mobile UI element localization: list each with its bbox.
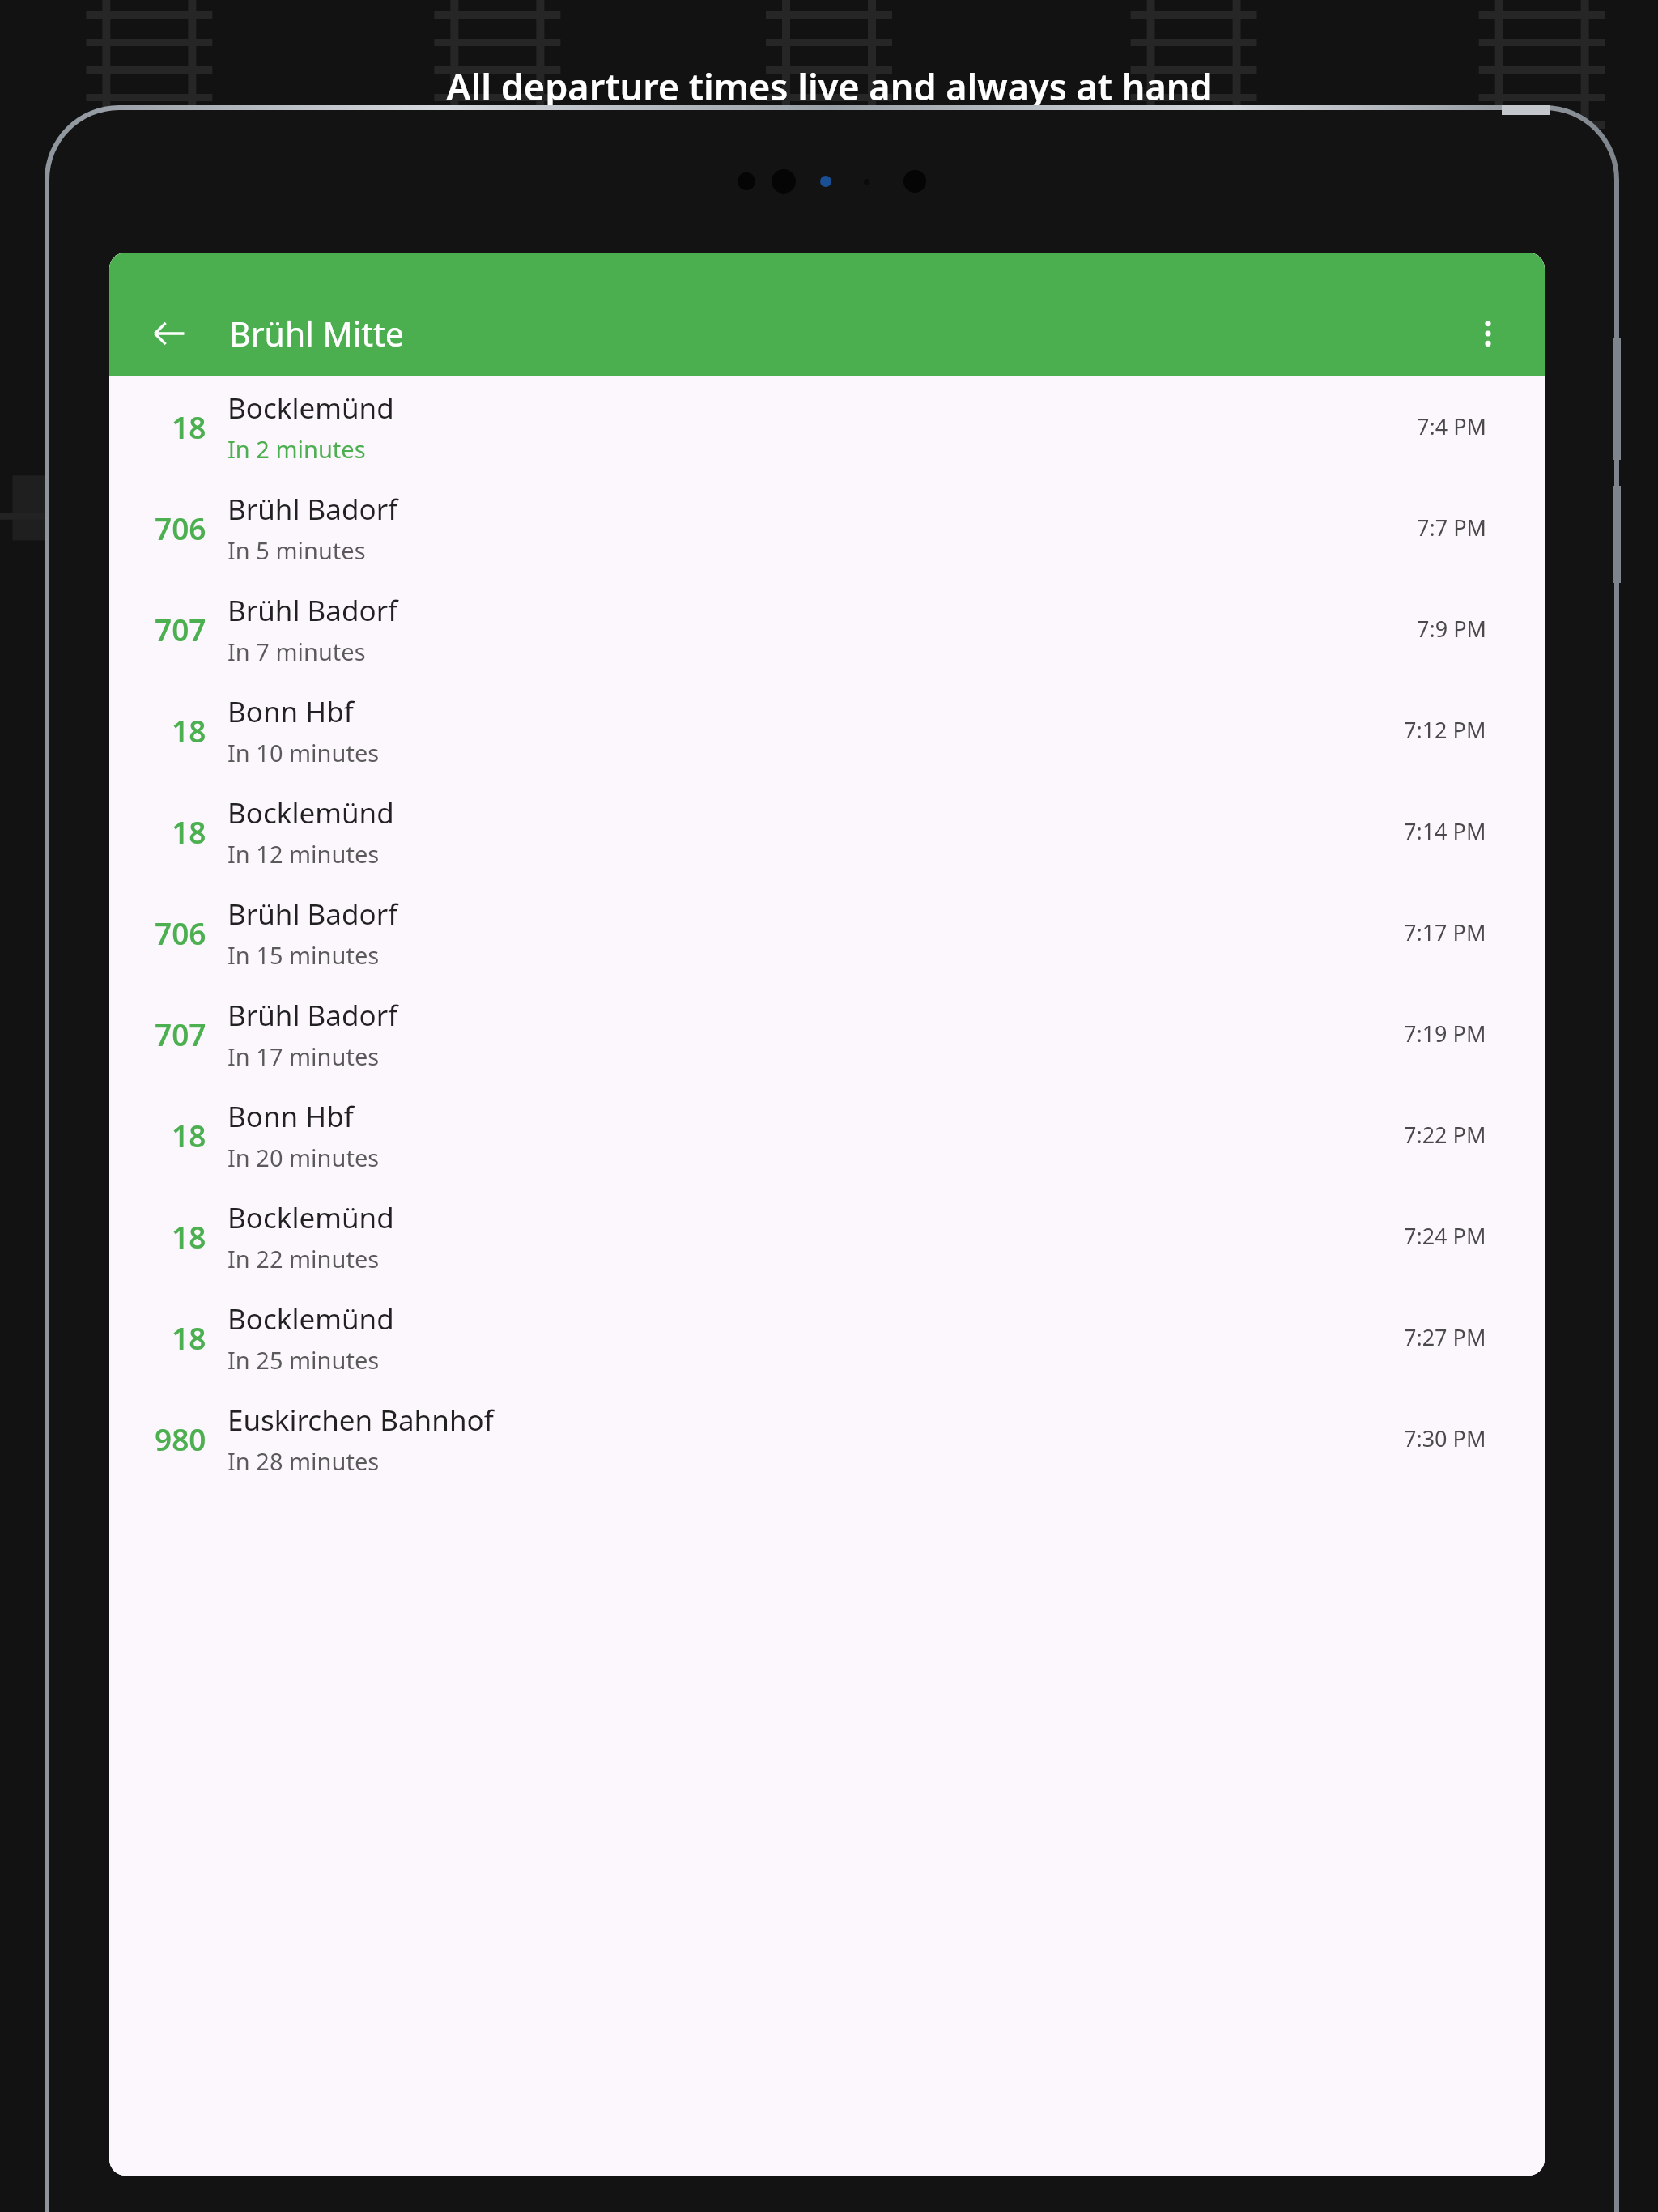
button[interactable]: 18: [109, 1287, 1545, 1388]
staticText: 707: [155, 609, 206, 649]
staticText: In 15 minutes: [227, 939, 380, 971]
staticText: 18: [172, 1216, 206, 1257]
staticText: Brühl Mitte: [229, 311, 404, 356]
staticText: 7:4 PM: [1417, 411, 1486, 441]
button[interactable]: 706: [109, 882, 1545, 983]
button[interactable]: 18: [109, 376, 1545, 477]
staticText: Bonn Hbf: [227, 1097, 354, 1136]
staticText: Brühl Badorf: [227, 996, 398, 1035]
staticText: 706: [155, 912, 206, 953]
button[interactable]: 706: [109, 477, 1545, 578]
button[interactable]: Back: [130, 295, 208, 372]
staticText: In 20 minutes: [227, 1142, 380, 1173]
staticText: 7:7 PM: [1417, 513, 1486, 542]
staticText: 7:22 PM: [1404, 1120, 1486, 1150]
staticText: 7:9 PM: [1417, 614, 1486, 644]
staticText: 7:30 PM: [1404, 1423, 1486, 1453]
staticText: Brühl Badorf: [227, 490, 398, 529]
staticText: Brühl Badorf: [227, 591, 398, 630]
staticText: 18: [172, 406, 206, 447]
staticText: All departure times live and always at h…: [446, 62, 1213, 111]
staticText: 7:14 PM: [1404, 816, 1486, 846]
staticText: In 17 minutes: [227, 1040, 380, 1072]
staticText: Bocklemünd: [227, 1300, 394, 1338]
button[interactable]: 18: [109, 1084, 1545, 1185]
staticText: 7:17 PM: [1404, 917, 1486, 947]
staticText: In 2 minutes: [227, 433, 366, 465]
staticText: 707: [155, 1014, 206, 1054]
staticText: 7:24 PM: [1404, 1221, 1486, 1251]
staticText: In 22 minutes: [227, 1243, 380, 1274]
staticText: Bocklemünd: [227, 793, 394, 832]
button[interactable]: 18: [109, 679, 1545, 781]
staticText: Bocklemünd: [227, 1198, 394, 1237]
staticText: Bonn Hbf: [227, 692, 354, 731]
staticText: 18: [172, 811, 206, 852]
staticText: 18: [172, 1317, 206, 1358]
staticText: 7:27 PM: [1404, 1322, 1486, 1352]
staticText: 18: [172, 1115, 206, 1155]
staticText: 7:12 PM: [1404, 715, 1486, 745]
staticText: 7:19 PM: [1404, 1019, 1486, 1049]
staticText: In 10 minutes: [227, 737, 380, 768]
button[interactable]: 707: [109, 983, 1545, 1084]
staticText: In 28 minutes: [227, 1445, 380, 1477]
staticText: 18: [172, 710, 206, 751]
staticText: In 7 minutes: [227, 636, 366, 667]
staticText: In 25 minutes: [227, 1344, 380, 1376]
button[interactable]: 707: [109, 578, 1545, 679]
staticText: 980: [155, 1419, 206, 1459]
button[interactable]: 18: [109, 781, 1545, 882]
staticText: Brühl Badorf: [227, 895, 398, 934]
staticText: Euskirchen Bahnhof: [227, 1401, 494, 1440]
button[interactable]: 18: [109, 1185, 1545, 1287]
button[interactable]: More options: [1449, 295, 1527, 372]
staticText: 706: [155, 508, 206, 548]
staticText: In 5 minutes: [227, 534, 366, 566]
button[interactable]: 980: [109, 1388, 1545, 1489]
staticText: Bocklemünd: [227, 389, 394, 428]
staticText: In 12 minutes: [227, 838, 380, 870]
